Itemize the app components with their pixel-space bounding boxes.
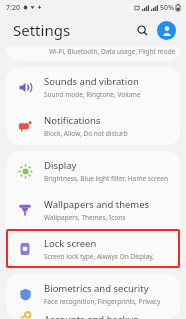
staticText: Lock screen bbox=[44, 237, 97, 250]
staticText: Display bbox=[44, 159, 77, 172]
button[interactable]: Display bbox=[6, 151, 180, 190]
button[interactable]: Wallpapers and themes bbox=[6, 190, 180, 229]
staticText: Block, Allow, Do not disturb bbox=[44, 129, 128, 138]
staticText: Notifications bbox=[44, 114, 101, 127]
staticText: Biometrics and security bbox=[44, 282, 149, 295]
button[interactable]: Search bbox=[132, 20, 152, 40]
staticText: Sounds and vibration bbox=[44, 75, 139, 88]
staticText: Wi-Fi, Bluetooth, Data usage, Flight mod… bbox=[49, 47, 176, 56]
staticText: Screen lock type, Always On Display, Clo… bbox=[44, 252, 172, 261]
button[interactable]: Biometrics and security bbox=[6, 274, 180, 313]
button[interactable]: Profile bbox=[157, 21, 176, 40]
staticText: Wallpapers and themes bbox=[44, 198, 150, 211]
button[interactable]: Accounts and backup bbox=[6, 313, 180, 319]
button[interactable]: Lock screen bbox=[6, 229, 180, 268]
staticText: 50% bbox=[160, 3, 174, 13]
staticText: 7:20 bbox=[6, 3, 20, 13]
staticText: Settings bbox=[13, 20, 71, 40]
staticText: Face recognition, Fingerprints, Privacy bbox=[44, 297, 161, 306]
button[interactable]: Sounds and vibration bbox=[6, 67, 180, 106]
staticText: Brightness, Blue light filter, Home scre… bbox=[44, 174, 168, 183]
staticText: Wallpapers, Themes, Icons bbox=[44, 213, 126, 222]
button[interactable]: Notifications bbox=[6, 106, 180, 145]
staticText: Accounts and backup bbox=[44, 313, 140, 319]
staticText: Sound mode, Ringtone, Volume bbox=[44, 90, 141, 99]
button[interactable]: Wi-Fi, Bluetooth, Data usage, Flight mod… bbox=[6, 47, 180, 61]
